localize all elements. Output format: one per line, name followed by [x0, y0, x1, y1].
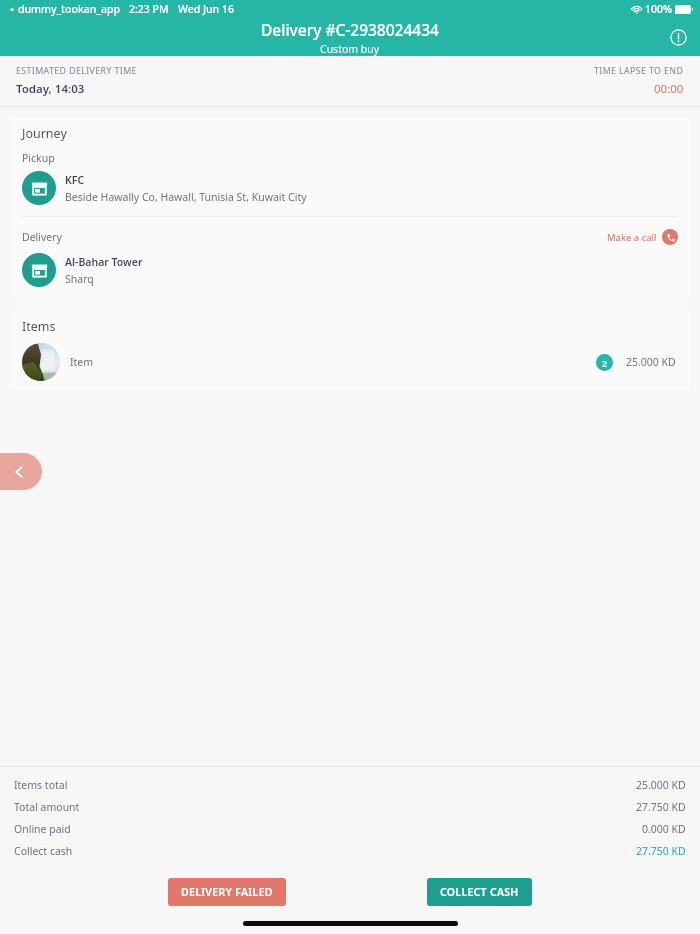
- staticText: Items total: [14, 778, 68, 792]
- staticText: ESTIMATED DELIVERY TIME: [16, 65, 137, 77]
- button[interactable]: COLLECT CASH: [427, 878, 532, 906]
- staticText: 2:23 PM: [129, 2, 169, 16]
- staticText: Al-Bahar Tower: [65, 255, 143, 269]
- staticText: 00:00: [654, 81, 684, 97]
- staticText: 2: [602, 357, 608, 369]
- staticText: Collect cash: [14, 844, 73, 858]
- button[interactable]: Al-Bahar Tower: [10, 253, 690, 287]
- staticText: Items: [22, 318, 56, 335]
- button[interactable]: Item: [10, 343, 690, 381]
- staticText: Wed Jun 16: [178, 2, 234, 16]
- staticText: Today, 14:03: [16, 81, 85, 97]
- staticText: TIME LAPSE TO END: [594, 65, 684, 77]
- staticText: Item: [70, 355, 94, 369]
- staticText: Delivery #C-2938024434: [261, 19, 439, 40]
- button[interactable]: Back: [0, 453, 42, 490]
- staticText: 25.000 KD: [626, 355, 676, 369]
- staticText: Pickup: [22, 151, 55, 165]
- staticText: 100%: [645, 2, 672, 16]
- staticText: Make a call: [607, 231, 657, 244]
- staticText: DELIVERY FAILED: [181, 885, 273, 899]
- staticText: Custom buy: [320, 42, 380, 56]
- staticText: Journey: [22, 125, 67, 142]
- button[interactable]: Information: [664, 23, 692, 51]
- staticText: Delivery: [22, 230, 62, 244]
- staticText: 27.750 KD: [636, 844, 686, 858]
- staticText: dummy_tookan_app: [18, 2, 120, 16]
- staticText: KFC: [65, 173, 85, 187]
- staticText: 25.000 KD: [636, 778, 686, 792]
- staticText: Online paid: [14, 822, 71, 836]
- button[interactable]: Make a call: [605, 228, 680, 246]
- button[interactable]: KFC: [10, 171, 690, 205]
- button[interactable]: DELIVERY FAILED: [168, 878, 286, 906]
- staticText: 27.750 KD: [636, 800, 686, 814]
- staticText: Beside Hawally Co, Hawall, Tunisia St, K…: [65, 190, 307, 204]
- staticText: Sharq: [65, 272, 94, 286]
- staticText: COLLECT CASH: [440, 885, 519, 899]
- staticText: 0.000 KD: [642, 822, 686, 836]
- staticText: Total amount: [14, 800, 80, 814]
